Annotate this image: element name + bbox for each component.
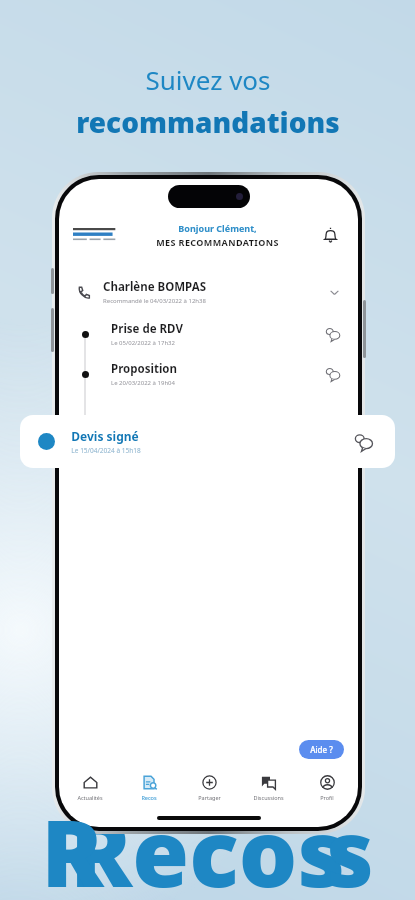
staticText: Aide ? — [310, 744, 333, 755]
button[interactable]: Proposition — [59, 361, 358, 387]
button[interactable]: Discussion — [351, 429, 377, 455]
staticText: Bonjour Clément, — [178, 222, 257, 234]
button[interactable]: Actualités — [62, 769, 118, 801]
staticText: Recommandé le 04/03/2022 à 12h38 — [103, 297, 206, 305]
staticText: Mission terminée — [111, 429, 211, 445]
staticText: Recos — [70, 789, 345, 900]
button[interactable]: Discussion — [322, 323, 344, 345]
button[interactable]: Discussion — [322, 363, 344, 385]
staticText: Le 05/02/2022 à 17h32 — [111, 339, 175, 347]
staticText: Proposition — [111, 361, 177, 377]
button[interactable]: Charlène BOMPAS — [59, 275, 358, 309]
button[interactable]: Notifications — [316, 221, 344, 249]
button[interactable]: Partager — [181, 769, 237, 801]
staticText: Actualités — [77, 794, 103, 801]
button[interactable]: Profil — [299, 769, 355, 801]
staticText: Suivez vos — [145, 62, 271, 97]
staticText: Partager — [198, 794, 221, 801]
staticText: Charlène BOMPAS — [103, 279, 206, 295]
staticText: Le 15/04/2024 à 15h18 — [71, 446, 141, 455]
staticText: MES RECOMMANDATIONS — [156, 236, 279, 248]
button[interactable]: Développer — [324, 282, 344, 302]
staticText: Recos — [141, 794, 157, 801]
button[interactable]: Recos — [121, 769, 177, 801]
button[interactable]: Devis signé — [20, 415, 395, 468]
button[interactable]: Discussions — [240, 769, 296, 801]
staticText: R — [41, 789, 104, 900]
staticText: Discussions — [253, 794, 284, 801]
staticText: Devis signé — [71, 428, 139, 444]
button[interactable]: Mission terminée — [59, 429, 358, 445]
button[interactable]: Aide ? — [299, 740, 344, 759]
button[interactable]: Prise de RDV — [59, 321, 358, 347]
staticText: s — [326, 789, 374, 900]
staticText: Prise de RDV — [111, 321, 183, 337]
staticText: Profil — [320, 794, 334, 801]
staticText: Le 20/03/2022 à 19h04 — [111, 379, 175, 387]
staticText: recommandations — [76, 103, 340, 141]
